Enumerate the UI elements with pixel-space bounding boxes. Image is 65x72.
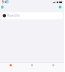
staticText: 9:41 [2, 0, 9, 4]
button[interactable]: Profile [43, 60, 64, 72]
button[interactable]: Profile [59, 6, 61, 8]
button[interactable]: Menu [1, 6, 4, 8]
button[interactable]: Search [21, 60, 43, 72]
button[interactable]: Home [0, 60, 21, 72]
staticText: Row title [7, 14, 20, 17]
